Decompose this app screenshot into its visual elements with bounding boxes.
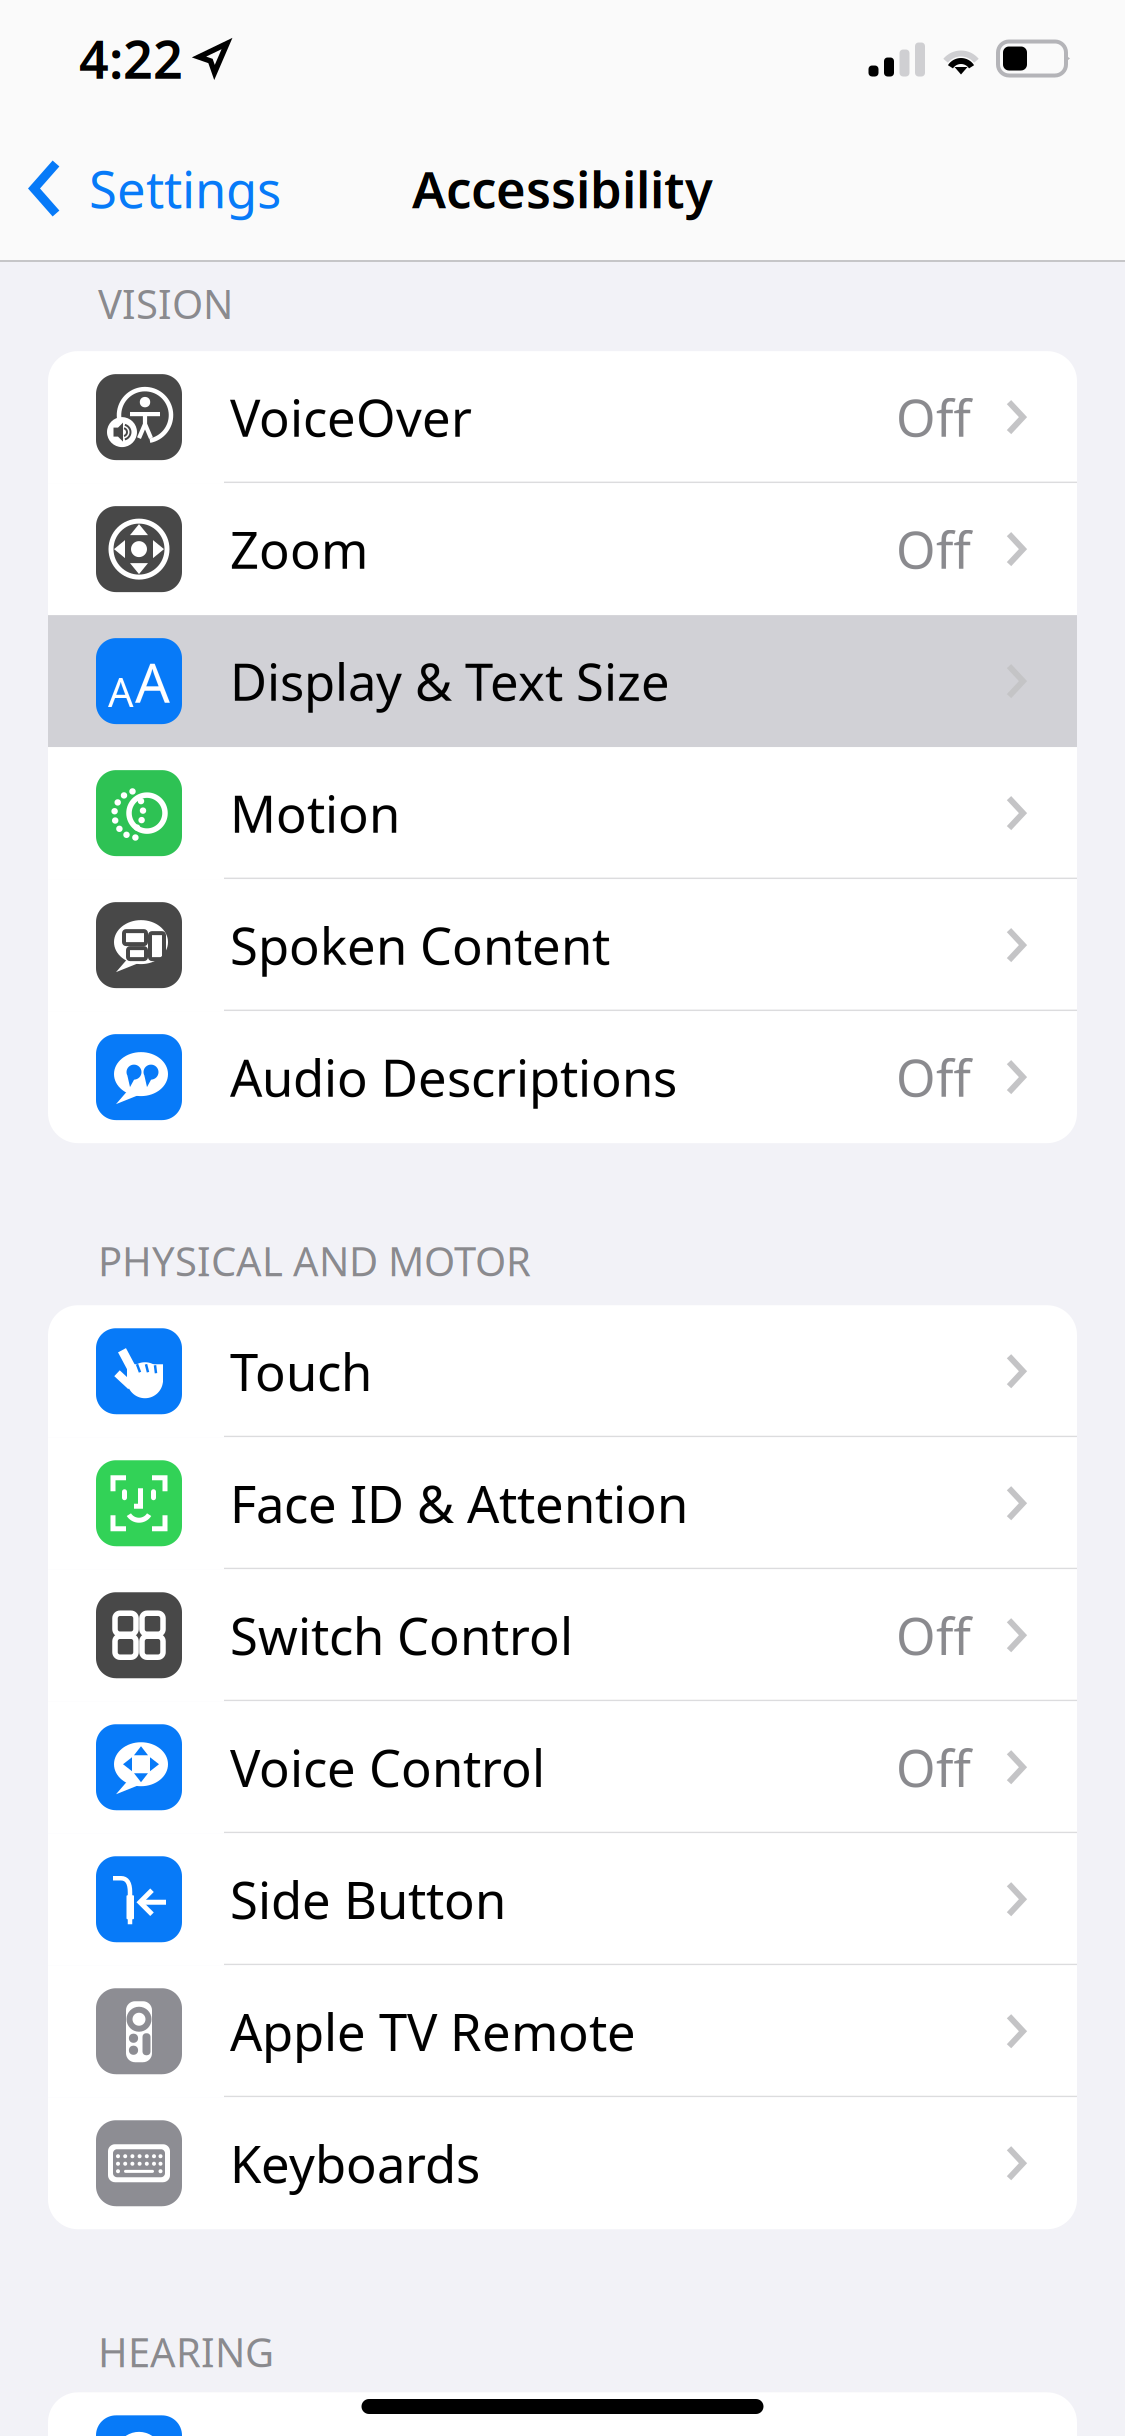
staticText: VoiceOver (230, 383, 472, 451)
staticText: Keyboards (230, 2130, 480, 2197)
button[interactable]: Keyboards (48, 2097, 1077, 2229)
staticText: Audio Descriptions (230, 1043, 677, 1111)
staticText: Face ID & Attention (230, 1470, 688, 1537)
staticText: Off (896, 515, 971, 583)
staticText: Off (896, 383, 971, 451)
staticText: PHYSICAL AND MOTOR (98, 1234, 531, 1287)
staticText: Off (896, 1734, 971, 1801)
staticText: A (135, 645, 170, 718)
button[interactable]: Audio Descriptions (48, 1011, 1077, 1143)
staticText: Side Button (230, 1866, 506, 1933)
button[interactable]: Side Button (48, 1833, 1077, 1965)
staticText: Off (896, 1043, 971, 1111)
staticText: Off (896, 1602, 971, 1669)
staticText: Spoken Content (230, 911, 610, 979)
staticText: 4:22 (79, 24, 183, 93)
button[interactable]: Switch Control (48, 1569, 1077, 1701)
button[interactable]: Voice Control (48, 1701, 1077, 1833)
staticText: A (108, 665, 134, 718)
button[interactable]: Motion (48, 747, 1077, 879)
staticText: Accessibility (412, 155, 713, 222)
button[interactable]: Touch (48, 1305, 1077, 1437)
staticText: Settings (89, 155, 281, 222)
staticText: Switch Control (230, 1602, 573, 1669)
staticText: Motion (230, 779, 400, 847)
staticText: Voice Control (230, 1734, 545, 1801)
button[interactable]: Face ID & Attention (48, 1437, 1077, 1569)
staticText: HEARING (98, 2325, 274, 2378)
staticText: VISION (98, 277, 233, 330)
staticText: Apple TV Remote (230, 1998, 636, 2065)
staticText: Touch (230, 1338, 372, 1405)
button[interactable]: Settings (0, 133, 301, 243)
button[interactable]: Spoken Content (48, 879, 1077, 1011)
staticText: Zoom (230, 515, 368, 583)
button[interactable]: Apple TV Remote (48, 1965, 1077, 2097)
button[interactable]: VoiceOver (48, 351, 1077, 483)
button[interactable]: Zoom (48, 483, 1077, 615)
staticText: Display & Text Size (230, 647, 670, 715)
button[interactable]: A (48, 615, 1077, 747)
button[interactable]: Hearing Devices (48, 2392, 1077, 2436)
